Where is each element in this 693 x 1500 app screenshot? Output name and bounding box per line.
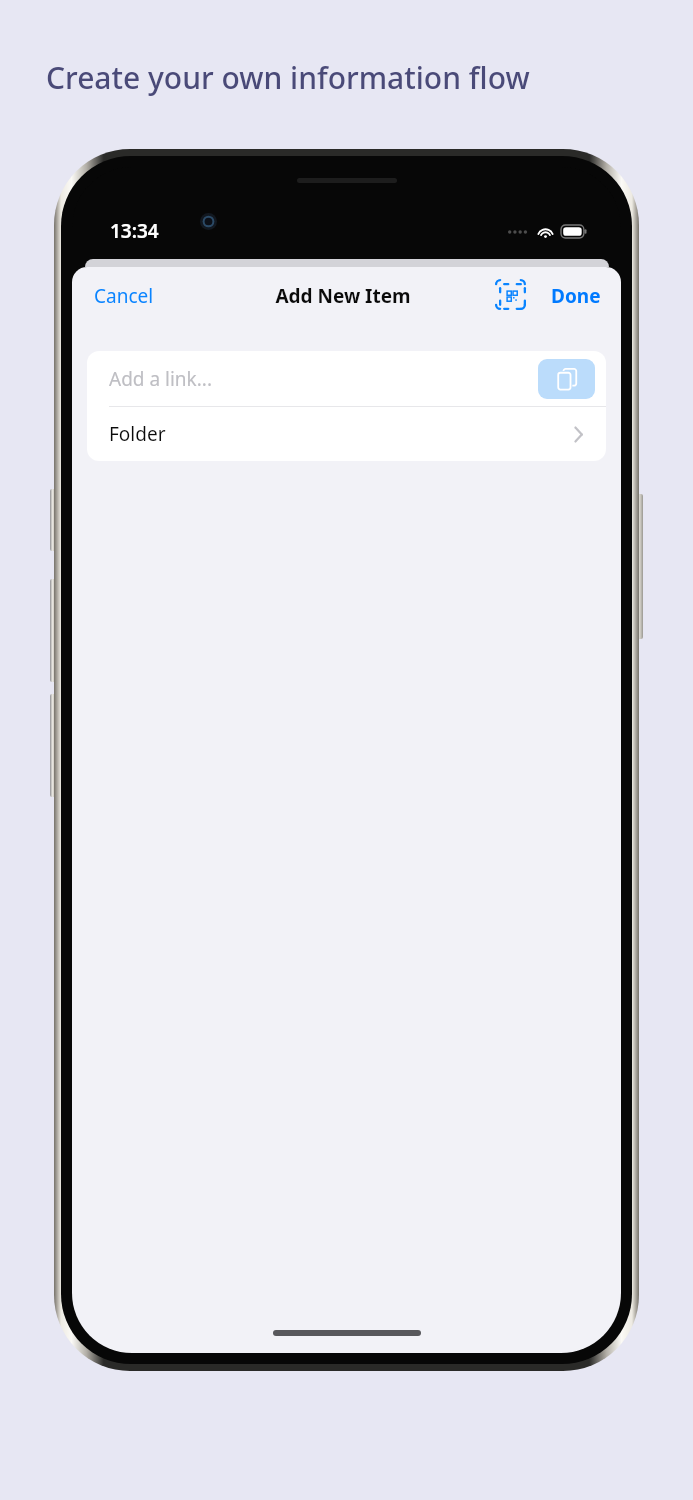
button[interactable]: Scan QR code (494, 278, 531, 315)
staticText: 13:34 (110, 218, 159, 244)
button[interactable]: Cancel (82, 277, 166, 315)
staticText: Create your own information flow (46, 57, 530, 98)
staticText: Add a link... (109, 366, 538, 392)
staticText: Add New Item (275, 283, 411, 309)
staticText: Folder (109, 421, 573, 447)
button[interactable]: Done (545, 277, 607, 315)
button[interactable]: Paste from clipboard (538, 359, 595, 399)
button[interactable]: Add a link... (87, 351, 606, 406)
staticText: Done (551, 283, 601, 309)
staticText: Cancel (94, 283, 154, 309)
button[interactable]: Folder (87, 407, 606, 461)
